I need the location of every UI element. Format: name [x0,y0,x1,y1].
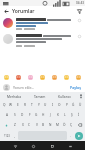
button[interactable]: Keyboard [66,142,74,150]
button[interactable]: ?123 [1,131,12,140]
staticText: O [58,103,61,107]
button[interactable]: K [54,110,61,120]
staticText: Ş [71,113,73,117]
staticText: Y [38,103,40,107]
staticText: L [64,113,66,117]
staticText: E [17,103,19,107]
button[interactable]: . [68,131,73,140]
button[interactable]: Ç [68,120,75,130]
button[interactable]: C [26,120,33,130]
button[interactable]: B [40,120,47,130]
staticText: . [70,134,71,138]
button[interactable]: Profile photo [3,34,13,44]
staticText: Tamam [34,94,46,98]
staticText: A [6,113,9,117]
button[interactable]: , [12,131,17,140]
staticText: Yorum ekle... [13,85,35,90]
button[interactable]: Yorum ekle... [13,85,69,90]
staticText: F [29,113,31,117]
staticText: M [56,123,59,127]
button[interactable]: R [21,100,28,110]
staticText: Ö [63,123,66,127]
button[interactable]: Paylaş [69,85,82,90]
button[interactable]: E [14,100,21,110]
button[interactable]: S [11,110,19,120]
button[interactable]: P [63,100,70,110]
button[interactable]: O [56,100,63,110]
staticText: V [36,123,38,127]
button[interactable]: J [47,110,54,120]
button[interactable]: Profile photo [3,18,13,28]
staticText: N [49,123,52,127]
staticText: J [50,113,51,117]
staticText: R [24,103,26,107]
button[interactable]: G [33,110,40,120]
button[interactable]: Emoji [3,74,10,81]
staticText: T [31,103,33,107]
button[interactable]: Voice input [77,92,84,100]
button[interactable]: Emoji [39,74,46,81]
staticText: X [22,123,24,127]
staticText: K [57,113,59,117]
button[interactable]: A [3,110,11,120]
button[interactable]: Tamam [27,92,52,100]
button[interactable]: Z [11,120,19,130]
button[interactable]: X [19,120,26,130]
staticText: Merhaba [7,94,21,98]
staticText: Ç [70,123,73,127]
button[interactable]: U [42,100,49,110]
button[interactable]: Emoji [75,74,82,81]
button[interactable]: Ö [61,120,68,130]
staticText: W [9,103,12,107]
staticText: D [21,113,24,117]
button[interactable]: Back [11,142,19,150]
button[interactable]: Y [35,100,42,110]
staticText: B [42,123,45,127]
button[interactable]: Shift [1,120,11,130]
staticText: ?123 [4,134,10,138]
staticText: İ [78,113,80,117]
button[interactable]: Like [77,34,82,39]
button[interactable]: Emoji [15,74,22,81]
staticText: Yorumlar [12,8,35,15]
button[interactable]: N [47,120,54,130]
staticText: Paylaş [70,85,81,90]
button[interactable]: D [19,110,26,120]
staticText: Kullanıcı [58,94,71,98]
button[interactable]: T [28,100,35,110]
staticText: G [35,113,38,117]
button[interactable]: L [61,110,68,120]
button[interactable]: Send [73,131,84,140]
button[interactable]: Recents [48,142,56,150]
button[interactable]: İ [75,110,82,120]
button[interactable]: I [49,100,56,110]
button[interactable]: Ş [68,110,75,120]
button[interactable]: Back [2,7,10,15]
button[interactable]: Emoji [27,74,34,81]
button[interactable]: W [7,100,14,110]
staticText: Z [14,123,16,127]
staticText: P [66,103,68,107]
button[interactable]: Like [77,18,82,23]
button[interactable]: Home [29,142,37,150]
staticText: I [52,103,54,107]
button[interactable]: Merhaba [1,92,27,100]
staticText: Ğ [72,103,75,107]
button[interactable]: V [33,120,40,130]
button[interactable]: Ğ [70,100,77,110]
button[interactable]: Kullanıcı [52,92,77,100]
button[interactable]: Q [1,100,7,110]
button[interactable]: H [40,110,47,120]
staticText: Q [3,103,6,107]
staticText: U [44,103,47,107]
button[interactable]: F [26,110,33,120]
button[interactable]: Filter [75,7,83,15]
button[interactable]: Backspace [75,120,84,130]
button[interactable]: Ü [77,100,84,110]
button[interactable]: M [54,120,61,130]
button[interactable]: Emoji [63,74,70,81]
staticText: , [14,134,15,138]
staticText: Ü [79,103,82,107]
button[interactable]: Emoji [51,74,58,81]
